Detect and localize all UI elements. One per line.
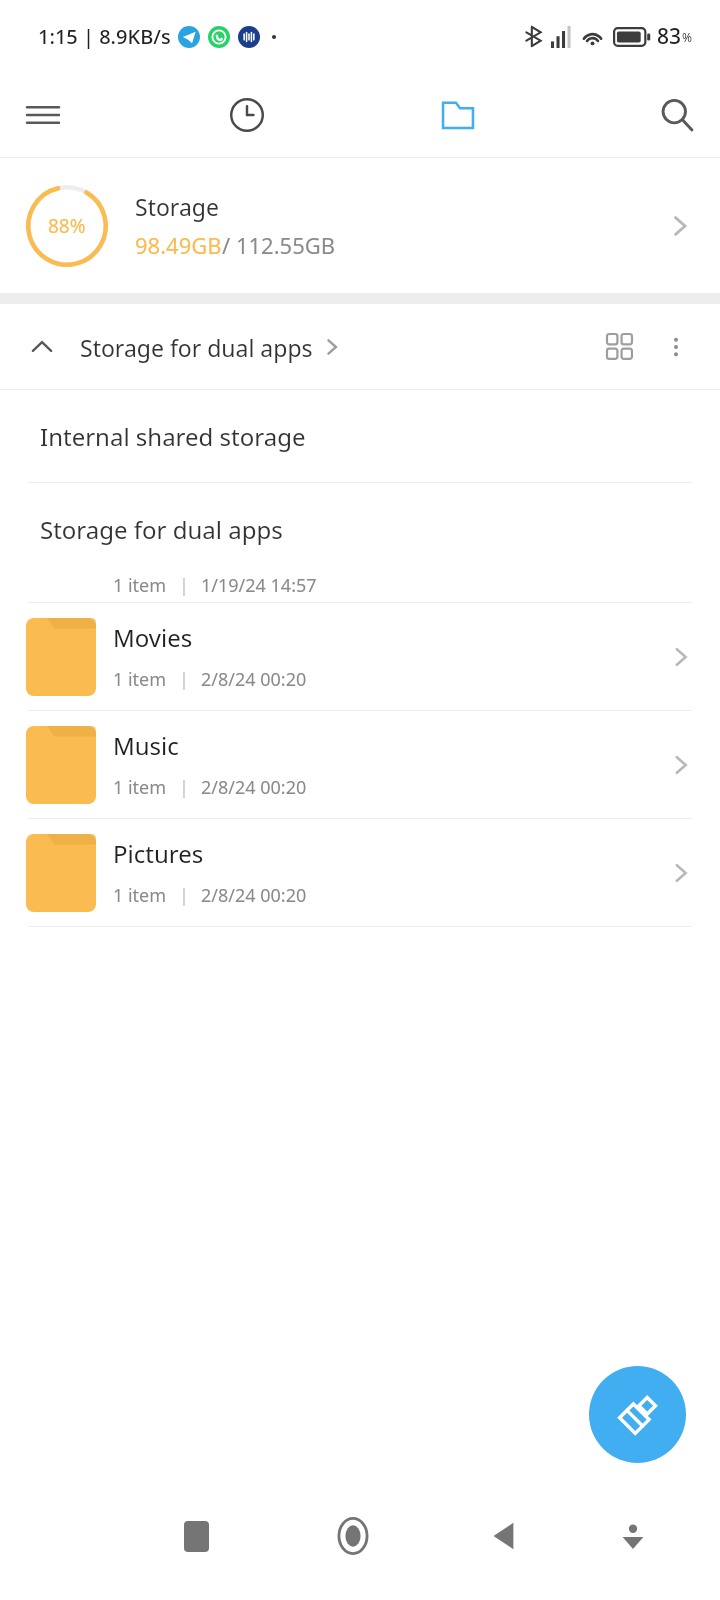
button[interactable]: Recents <box>165 1505 227 1567</box>
button[interactable]: Grid view <box>592 319 648 375</box>
staticText: 1/19/24 14:57 <box>201 573 317 598</box>
staticText: 88% <box>48 213 86 239</box>
button[interactable]: Home <box>322 1505 384 1567</box>
button[interactable]: Music <box>0 711 720 818</box>
staticText: Storage for dual apps <box>80 332 313 363</box>
staticText: 1:15 | 8.9KB/s <box>38 23 171 50</box>
button[interactable]: Folders <box>427 84 489 146</box>
button[interactable]: Clean up storage <box>589 1366 686 1463</box>
staticText: 2/8/24 00:20 <box>201 775 307 800</box>
button[interactable]: Search <box>646 84 708 146</box>
staticText: | <box>179 573 189 598</box>
button[interactable]: Movies <box>0 603 720 710</box>
staticText: Movies <box>113 621 193 654</box>
button[interactable]: Back <box>474 1505 536 1567</box>
staticText: | <box>179 775 189 800</box>
button[interactable]: 88% <box>0 158 720 293</box>
button[interactable]: Pictures <box>0 819 720 926</box>
staticText: 1 item <box>113 775 167 800</box>
staticText: 2/8/24 00:20 <box>201 883 307 908</box>
staticText: 1 item <box>113 667 167 692</box>
staticText: | <box>179 667 189 692</box>
staticText: Storage for dual apps <box>40 513 283 546</box>
staticText: Pictures <box>113 837 204 870</box>
staticText: % <box>682 29 692 45</box>
button[interactable]: Menu <box>12 84 74 146</box>
staticText: 2/8/24 00:20 <box>201 667 307 692</box>
button[interactable]: Storage for dual apps <box>22 327 351 367</box>
button[interactable]: Hide keyboard <box>602 1505 664 1567</box>
staticText: 83 <box>657 22 682 51</box>
staticText: Storage <box>135 191 219 222</box>
staticText: / 112.55GB <box>222 230 336 260</box>
button[interactable]: Recent <box>216 84 278 146</box>
staticText: 1 item <box>113 883 167 908</box>
button[interactable]: Internal shared storage <box>0 390 720 482</box>
staticText: | <box>179 883 189 908</box>
staticText: 1 item <box>113 573 167 598</box>
staticText: 98.49GB <box>135 230 222 260</box>
button[interactable]: More options <box>648 319 704 375</box>
button[interactable]: Storage for dual apps <box>0 483 720 575</box>
staticText: Music <box>113 729 179 762</box>
staticText: Internal shared storage <box>40 420 306 453</box>
